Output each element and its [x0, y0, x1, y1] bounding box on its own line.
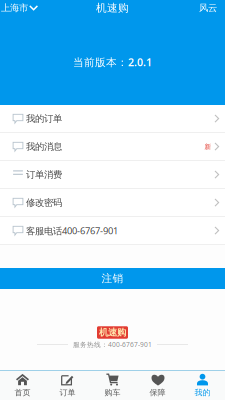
staticText: 订单	[59, 388, 75, 397]
button[interactable]: 修改密码	[0, 189, 225, 216]
button[interactable]: 客服电话400-6767-901	[0, 217, 225, 244]
staticText: 风云	[199, 2, 217, 14]
staticText: 客服电话400-6767-901	[26, 224, 118, 237]
staticText: 新	[204, 143, 211, 151]
button[interactable]: 订单消费	[0, 161, 225, 188]
staticText: 服务热线：400-6767-901	[73, 340, 152, 349]
staticText: 修改密码	[26, 197, 62, 208]
staticText: 我的	[194, 388, 210, 397]
staticText: 机速购	[96, 1, 129, 14]
button[interactable]: 我的消息	[0, 133, 225, 160]
staticText: 注销	[101, 272, 123, 285]
button[interactable]: 首页	[0, 371, 45, 400]
staticText: 上海市	[1, 2, 28, 14]
button[interactable]: 购车	[90, 371, 135, 400]
button[interactable]: 风云	[199, 0, 225, 16]
staticText: 当前版本：2.0.1	[73, 55, 152, 69]
button[interactable]: 订单	[45, 371, 90, 400]
staticText: 机速购	[99, 327, 126, 338]
button[interactable]: 我的	[180, 371, 225, 400]
staticText: 购车	[104, 388, 120, 397]
button[interactable]: 我的订单	[0, 105, 225, 132]
button[interactable]: 保障	[135, 371, 180, 400]
button[interactable]: 上海市	[0, 0, 41, 16]
staticText: 我的消息	[26, 141, 62, 152]
staticText: 订单消费	[26, 169, 62, 180]
staticText: 首页	[14, 388, 30, 397]
staticText: 我的订单	[26, 113, 62, 124]
staticText: 保障	[149, 388, 165, 397]
button[interactable]: 注销	[0, 268, 225, 289]
